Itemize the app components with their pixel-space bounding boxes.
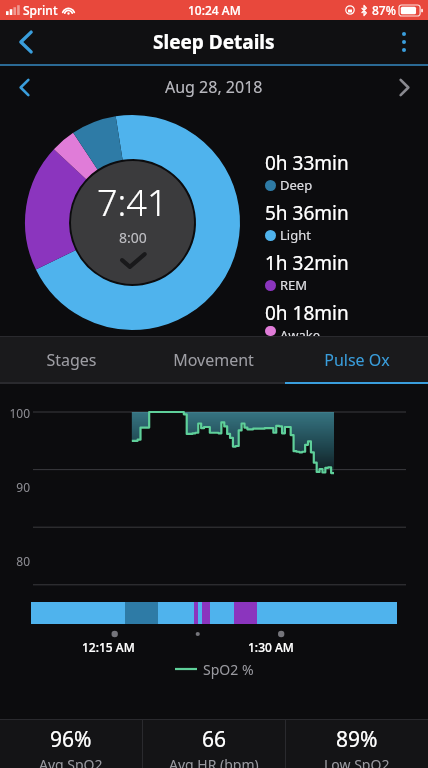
button[interactable]: Stages	[0, 337, 142, 382]
staticText: SpO2 %	[203, 660, 254, 679]
staticText: Light	[280, 226, 311, 244]
button[interactable]: Next day	[380, 66, 428, 108]
staticText: 5h 36min	[265, 200, 349, 226]
button[interactable]: Movement	[142, 337, 285, 382]
staticText: 10:24 AM	[188, 2, 241, 18]
staticText: 89%	[336, 725, 378, 754]
staticText: Avg SpO2	[39, 755, 103, 768]
staticText: 0h 33min	[265, 150, 349, 176]
button[interactable]: 96%	[0, 720, 142, 768]
staticText: 0h 18min	[265, 300, 349, 326]
button[interactable]: 89%	[286, 720, 428, 768]
staticText: Avg HR (bpm)	[169, 755, 259, 768]
staticText: 100	[4, 405, 30, 421]
staticText: 1:30 AM	[248, 639, 294, 655]
staticText: Stages	[46, 349, 97, 371]
staticText: 7:41	[97, 178, 168, 227]
staticText: Sleep Details	[153, 29, 275, 55]
staticText: 12:15 AM	[82, 639, 135, 655]
staticText: 1h 32min	[265, 250, 349, 276]
staticText: Deep	[280, 176, 313, 194]
button[interactable]: Previous day	[0, 66, 48, 108]
staticText: 90	[4, 479, 30, 495]
button[interactable]: More options	[380, 20, 428, 64]
staticText: Sprint	[23, 2, 58, 18]
staticText: 8:00	[119, 228, 147, 247]
staticText: 96%	[50, 725, 92, 754]
staticText: REM	[280, 276, 308, 294]
button[interactable]: 66	[143, 720, 285, 768]
staticText: 80	[4, 553, 30, 569]
staticText: Aug 28, 2018	[165, 76, 263, 98]
button[interactable]: Pulse Ox	[285, 337, 428, 382]
staticText: 87%	[372, 2, 396, 18]
staticText: Pulse Ox	[324, 349, 390, 371]
staticText: 66	[202, 725, 227, 754]
staticText: Low SpO2	[324, 755, 390, 768]
staticText: Awake	[280, 326, 321, 336]
staticText: Movement	[173, 349, 254, 371]
button[interactable]: Back	[0, 20, 52, 64]
